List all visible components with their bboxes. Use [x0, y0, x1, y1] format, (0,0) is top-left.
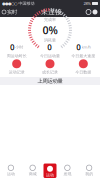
- staticText: 运动记录: [9, 70, 25, 75]
- staticText: 小时: [15, 45, 23, 49]
- staticText: 成长记录: [42, 70, 58, 75]
- staticText: 运动: [7, 171, 15, 176]
- staticText: 实时: [7, 9, 17, 15]
- staticText: 上周运动量: [37, 78, 62, 84]
- button[interactable]: 商城: [22, 165, 44, 176]
- staticText: 0%: [42, 23, 57, 37]
- staticText: 完成率: [44, 17, 56, 22]
- staticText: 0: [47, 42, 52, 52]
- staticText: 我的: [85, 171, 93, 176]
- staticText: 28%: [83, 1, 90, 6]
- staticText: 今日数据: [75, 70, 91, 75]
- staticText: 0: [10, 42, 15, 52]
- staticText: 中国移动: [18, 1, 34, 6]
- button[interactable]: 发现: [56, 165, 78, 176]
- staticText: 0: [76, 42, 81, 52]
- staticText: 周运动时长: [7, 53, 27, 58]
- button[interactable]: More: [92, 7, 100, 17]
- staticText: 消耗量: [44, 38, 56, 43]
- button[interactable]: 我的: [78, 165, 100, 176]
- button[interactable]: 成长记录: [33, 59, 67, 75]
- button[interactable]: 运动: [43, 163, 56, 178]
- button[interactable]: 今日数据: [67, 59, 100, 75]
- button[interactable]: Devices: [84, 7, 92, 17]
- staticText: 运动: [46, 173, 54, 178]
- staticText: 商城: [29, 171, 37, 176]
- button[interactable]: 实时: [0, 7, 19, 17]
- button[interactable]: 运动: [0, 165, 22, 176]
- button[interactable]: 运动记录: [0, 59, 33, 75]
- staticText: ●●●○○: [2, 1, 17, 6]
- staticText: km/h: [81, 44, 90, 50]
- staticText: 发现: [63, 171, 71, 176]
- staticText: 今日运动量: [40, 53, 60, 58]
- staticText: 今日最大速度: [71, 53, 95, 58]
- staticText: 未连接: [41, 8, 62, 16]
